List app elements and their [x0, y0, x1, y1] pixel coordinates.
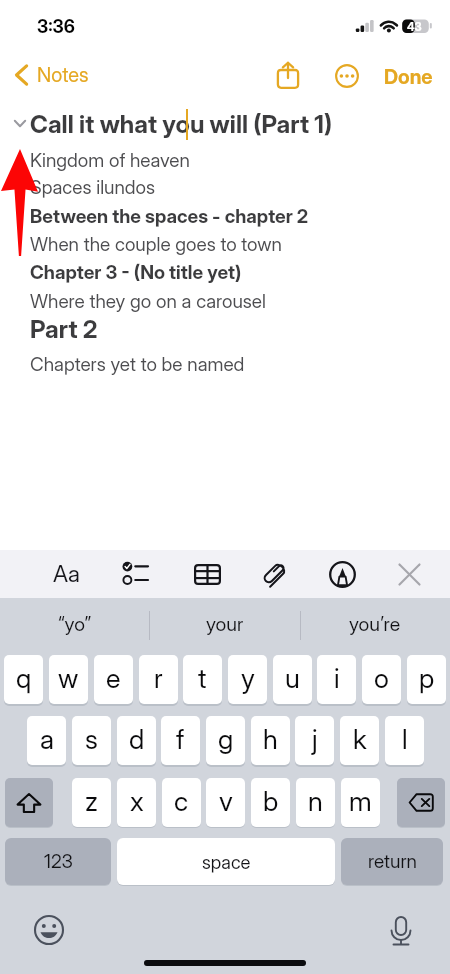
button[interactable]: t [183, 655, 222, 704]
staticText: e [106, 662, 121, 695]
button[interactable]: m [341, 778, 380, 827]
button[interactable]: Notes [13, 63, 89, 87]
button[interactable]: r [139, 655, 178, 704]
staticText: p [419, 662, 435, 695]
button[interactable]: Markup [313, 550, 371, 598]
button[interactable]: d [117, 716, 156, 765]
button[interactable]: k [340, 716, 379, 765]
button[interactable]: “yo” [0, 598, 150, 650]
button[interactable]: c [162, 778, 201, 827]
staticText: b [263, 785, 279, 818]
staticText: c [174, 785, 189, 818]
button[interactable]: your [150, 598, 300, 650]
button[interactable]: h [251, 716, 290, 765]
staticText: Spaces ilundos [30, 176, 156, 199]
staticText: j [312, 723, 318, 756]
staticText: h [263, 723, 278, 756]
button[interactable]: Emoji keyboard [34, 915, 64, 945]
staticText: u [285, 662, 300, 695]
staticText: space [202, 851, 251, 873]
staticText: i [334, 662, 340, 695]
button[interactable]: n [296, 778, 335, 827]
button[interactable]: q [4, 655, 43, 704]
staticText: w [58, 662, 79, 695]
button[interactable]: w [49, 655, 88, 704]
staticText: Notes [37, 63, 89, 87]
staticText: a [40, 723, 54, 756]
button[interactable]: you’re [300, 598, 450, 650]
staticText: y [241, 662, 255, 695]
staticText: you’re [349, 612, 401, 636]
button[interactable]: v [206, 778, 245, 827]
staticText: t [198, 662, 207, 695]
button[interactable]: o [362, 655, 401, 704]
staticText: z [85, 785, 98, 818]
staticText: g [218, 723, 234, 756]
button[interactable]: a [27, 716, 66, 765]
staticText: d [129, 723, 145, 756]
staticText: s [85, 723, 98, 756]
staticText: x [130, 785, 144, 818]
staticText: Chapters yet to be named [30, 353, 245, 376]
staticText: return [368, 850, 417, 873]
button[interactable]: z [72, 778, 111, 827]
button[interactable]: Done [384, 65, 433, 89]
button[interactable]: y [228, 655, 267, 704]
button[interactable]: i [317, 655, 356, 704]
button[interactable]: More options [335, 64, 359, 88]
button[interactable]: g [206, 716, 245, 765]
button[interactable]: space [117, 838, 335, 885]
staticText: v [219, 785, 233, 818]
button[interactable]: f [161, 716, 200, 765]
staticText: “yo” [58, 612, 92, 636]
staticText: l [402, 723, 408, 756]
staticText: o [374, 662, 389, 695]
button[interactable]: Shift [5, 778, 53, 827]
button[interactable]: b [251, 778, 290, 827]
staticText: 123 [44, 850, 73, 873]
button[interactable]: return [341, 838, 443, 885]
staticText: Kingdom of heaven [30, 149, 190, 172]
staticText: Done [384, 65, 433, 89]
staticText: Chapter 3 - (No title yet) [30, 261, 242, 284]
button[interactable]: u [273, 655, 312, 704]
button[interactable]: j [295, 716, 334, 765]
button[interactable]: Share [276, 60, 300, 89]
staticText: f [176, 723, 185, 756]
button[interactable]: Hide keyboard [380, 550, 438, 598]
button[interactable]: e [94, 655, 133, 704]
staticText: your [206, 612, 244, 636]
button[interactable]: Attachment [246, 550, 304, 598]
button[interactable]: s [72, 716, 111, 765]
staticText: Part 2 [30, 314, 98, 344]
staticText: Where they go on a carousel [30, 290, 266, 313]
staticText: When the couple goes to town [30, 233, 282, 256]
staticText: k [353, 723, 367, 756]
button[interactable]: Backspace [397, 778, 445, 827]
button[interactable]: 123 [5, 838, 111, 885]
staticText: Between the spaces - chapter 2 [30, 205, 309, 228]
staticText: m [349, 785, 372, 818]
button[interactable]: l [385, 716, 424, 765]
staticText: Call it what you will (Part 1) [30, 109, 333, 139]
staticText: 43 [407, 20, 422, 34]
button[interactable]: x [117, 778, 156, 827]
staticText: r [154, 662, 163, 695]
button[interactable]: p [407, 655, 446, 704]
button[interactable]: Checklist [106, 550, 164, 598]
staticText: 3:36 [37, 16, 75, 38]
staticText: q [16, 662, 32, 695]
button[interactable]: Text format [37, 550, 95, 598]
button[interactable]: Dictate [386, 915, 416, 945]
staticText: n [308, 785, 323, 818]
button[interactable]: Table [178, 550, 236, 598]
staticText: Aa [53, 560, 80, 588]
